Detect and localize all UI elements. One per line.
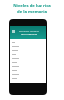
button[interactable] [10, 68, 46, 72]
button[interactable] [10, 76, 46, 80]
button[interactable] [10, 60, 46, 64]
button[interactable] [10, 64, 46, 68]
button[interactable] [10, 48, 46, 52]
button[interactable] [10, 56, 46, 60]
staticText: Resumen semanal [19, 30, 39, 33]
button[interactable] [10, 44, 46, 48]
staticText: de la memoria [17, 9, 47, 15]
staticText: de tu memoria [21, 33, 37, 36]
button[interactable] [10, 40, 46, 44]
button[interactable] [10, 72, 46, 76]
staticText: Niveles de luz rica [13, 3, 51, 9]
button[interactable] [10, 52, 46, 56]
